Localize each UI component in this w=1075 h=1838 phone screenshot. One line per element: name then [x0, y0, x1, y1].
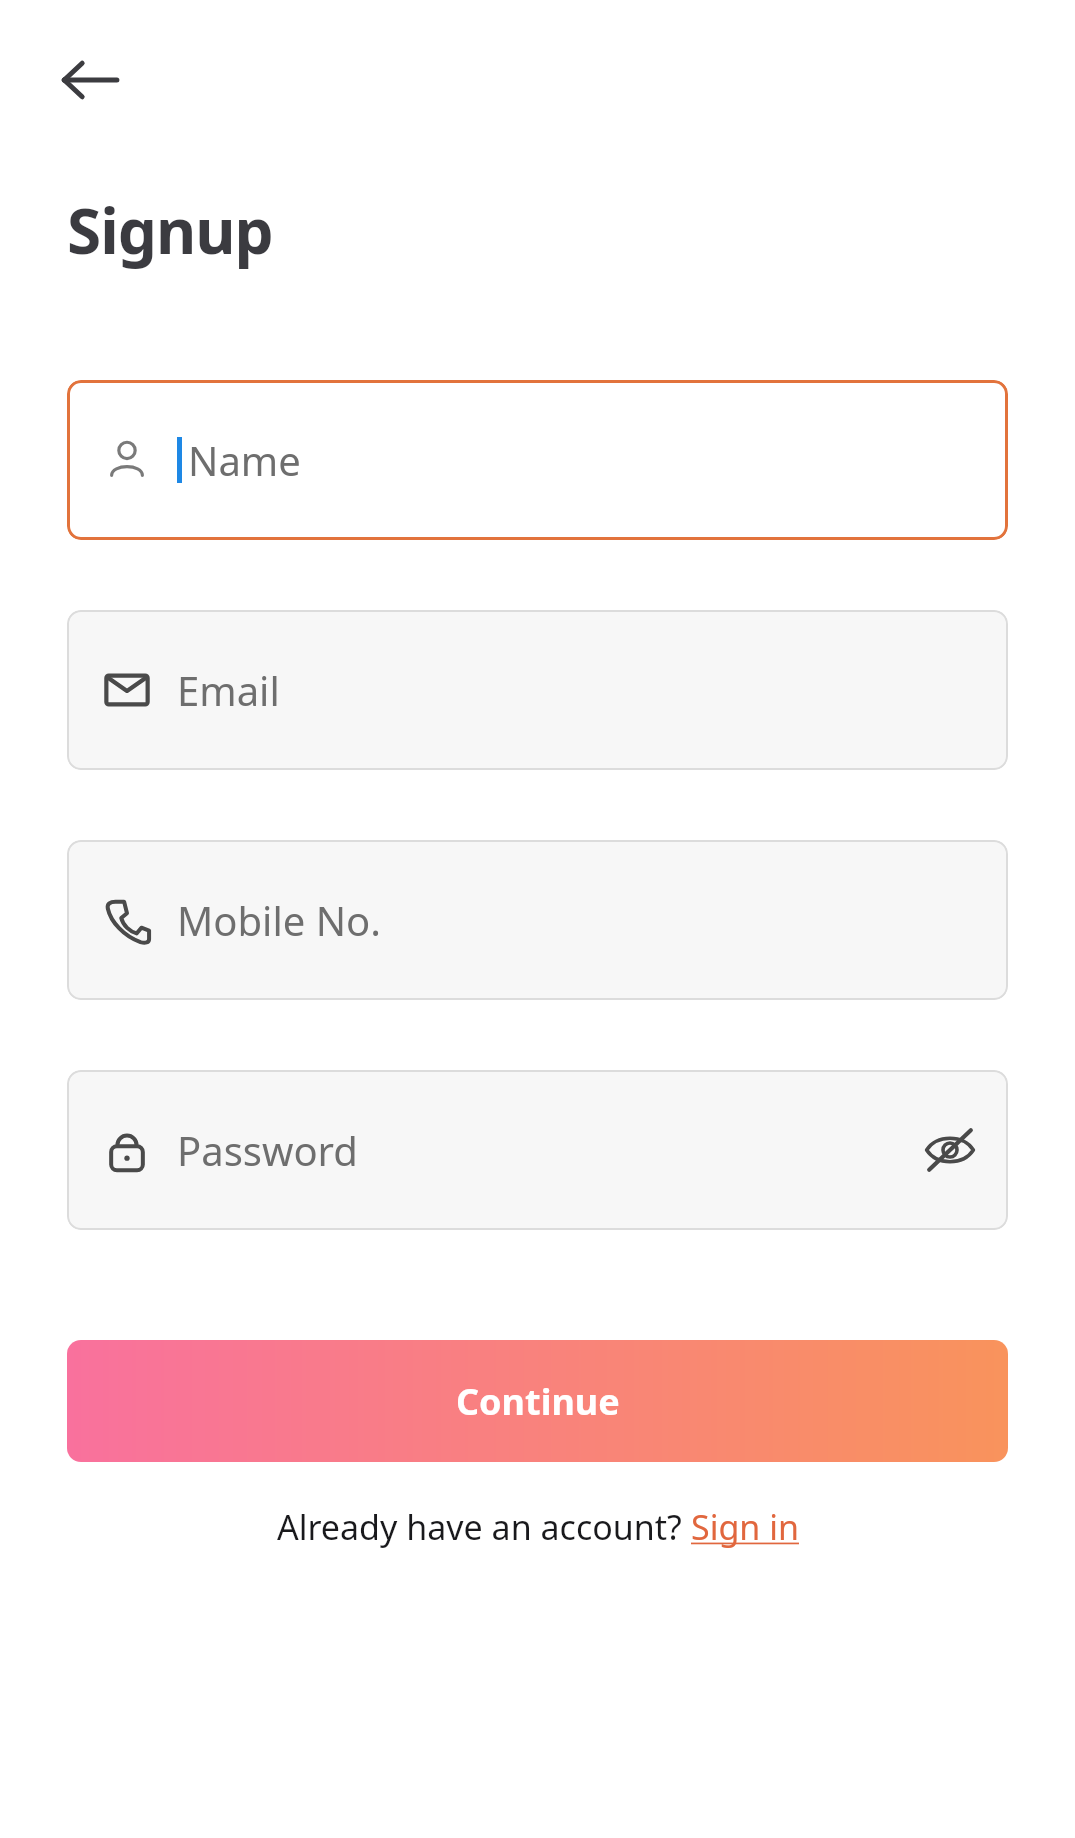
- button[interactable]: Show password: [904, 1104, 996, 1196]
- button[interactable]: Back: [50, 40, 130, 120]
- button[interactable]: Sign in: [691, 1504, 799, 1550]
- staticText: Continue: [456, 1377, 620, 1426]
- button[interactable]: Email: [67, 610, 1008, 770]
- staticText: Signup: [67, 188, 273, 272]
- staticText: Email: [177, 663, 280, 717]
- staticText: Name: [188, 433, 301, 487]
- staticText: Already have an account?: [277, 1504, 691, 1550]
- button[interactable]: Name: [67, 380, 1008, 540]
- staticText: Password: [177, 1123, 358, 1177]
- staticText: Mobile No.: [177, 893, 381, 947]
- button[interactable]: Mobile No.: [67, 840, 1008, 1000]
- button[interactable]: Password: [67, 1070, 1008, 1230]
- button[interactable]: Continue: [67, 1340, 1008, 1462]
- staticText: Sign in: [691, 1504, 799, 1550]
